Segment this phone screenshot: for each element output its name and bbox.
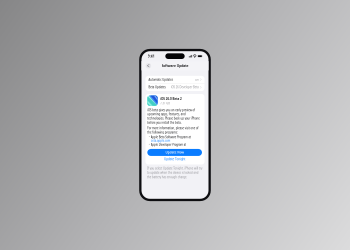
- staticText: iOS 26.0 Beta 2: [116, 13, 202, 29]
- staticText: Apple Beta Software Program at: [77, 166, 239, 181]
- button[interactable]: Update Now: [64, 221, 283, 249]
- staticText: Apple Developer Program at: [77, 197, 220, 211]
- staticText: iOS beta gives you an early preview of u…: [64, 58, 274, 122]
- staticText: For more information, please visit one o…: [64, 131, 269, 162]
- staticText: beta.apple.com: [77, 181, 156, 195]
- staticText: Update Now: [137, 227, 211, 243]
- button[interactable]: Update Tonight: [64, 249, 283, 250]
